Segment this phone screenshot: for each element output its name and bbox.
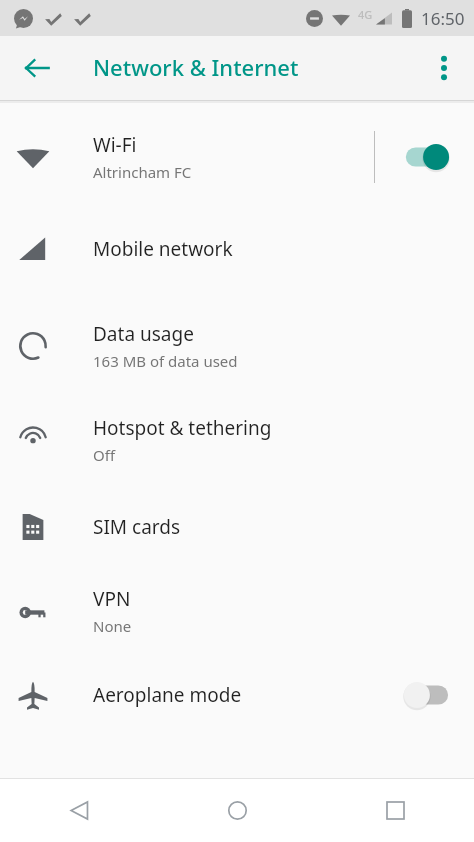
button[interactable]: Navigate up <box>13 44 61 92</box>
staticText: None <box>93 616 132 636</box>
staticText: 163 MB of data used <box>93 351 238 371</box>
button[interactable]: Recent apps <box>316 779 474 842</box>
staticText: Mobile network <box>93 236 233 262</box>
staticText: Wi-Fi <box>93 132 137 158</box>
button[interactable]: SIM cards <box>0 486 474 568</box>
staticText: 4G <box>358 7 373 22</box>
staticText: 16:50 <box>421 7 465 30</box>
button[interactable]: Home <box>158 779 316 842</box>
button[interactable]: Mobile network <box>0 201 474 297</box>
staticText: Altrincham FC <box>93 162 192 182</box>
staticText: Data usage <box>93 321 194 347</box>
button[interactable]: Back <box>0 779 158 842</box>
button[interactable]: Aeroplane mode toggle <box>400 673 452 717</box>
button[interactable]: VPN <box>0 568 474 653</box>
staticText: Hotspot & tethering <box>93 415 272 441</box>
staticText: Off <box>93 445 116 465</box>
button[interactable]: More options <box>421 45 467 91</box>
staticText: Aeroplane mode <box>93 682 242 708</box>
button[interactable]: Wi-Fi <box>0 113 474 201</box>
button[interactable]: Aeroplane mode <box>0 653 474 737</box>
staticText: VPN <box>93 586 131 612</box>
button[interactable]: Wi-Fi toggle <box>402 135 452 179</box>
staticText: Network & Internet <box>93 52 299 82</box>
staticText: SIM cards <box>93 514 181 540</box>
button[interactable]: Data usage <box>0 297 474 394</box>
button[interactable]: Hotspot & tethering <box>0 394 474 486</box>
